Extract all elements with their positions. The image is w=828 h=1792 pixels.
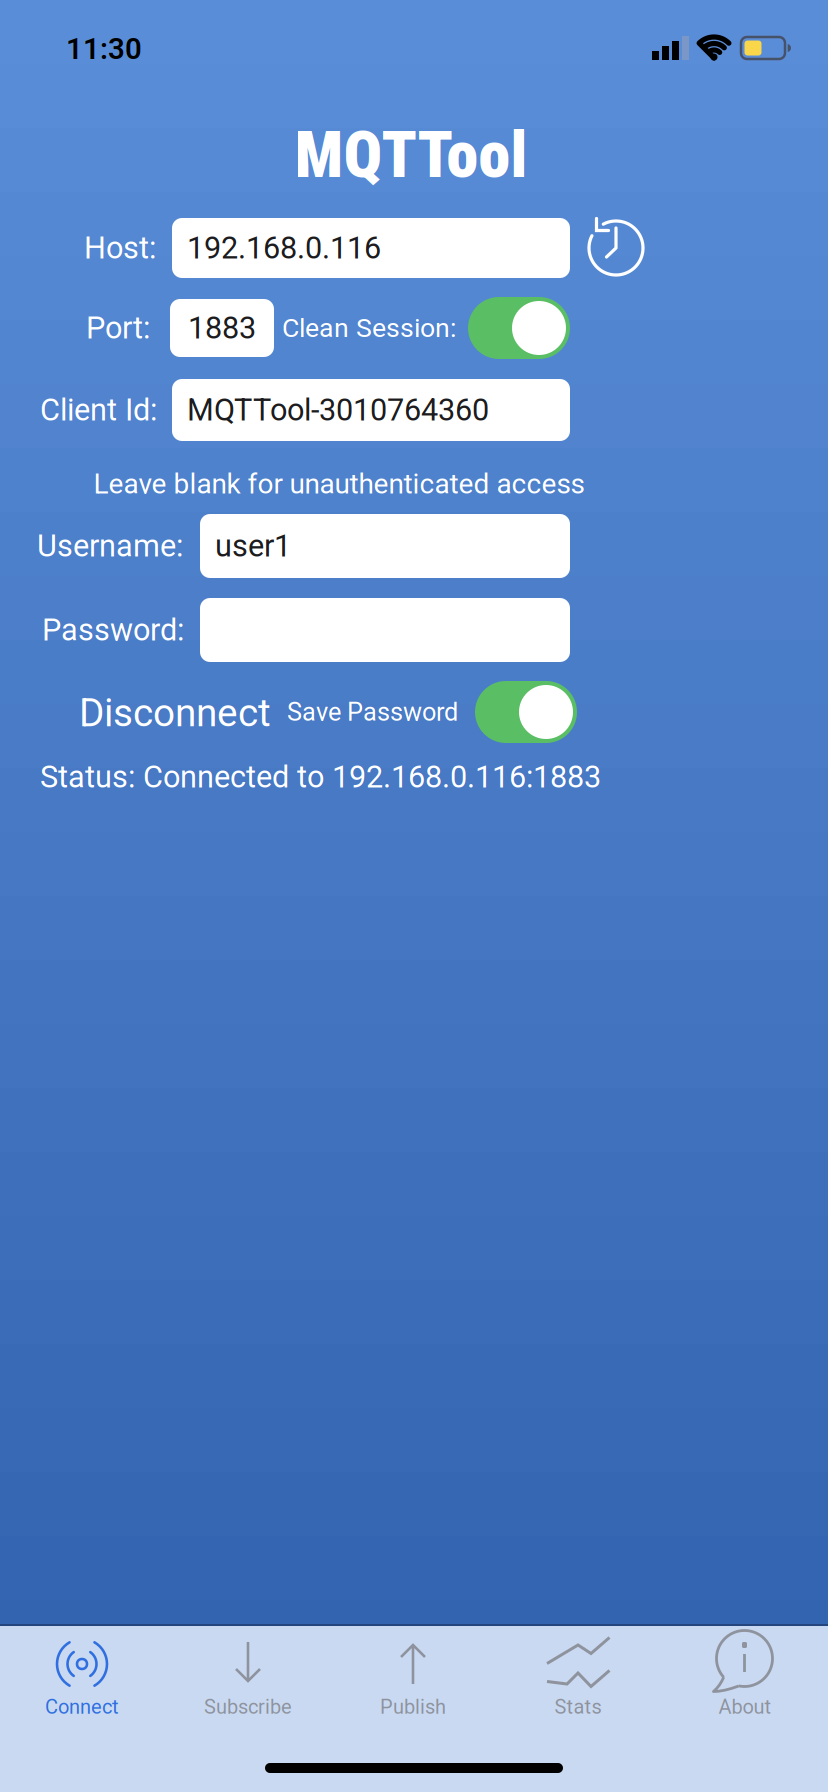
- staticText: 11:30: [66, 32, 142, 66]
- staticText: Host:: [84, 230, 156, 265]
- button[interactable]: Username: [200, 514, 570, 578]
- staticText: Status: Connected to 192.168.0.116:1883: [40, 759, 601, 794]
- button[interactable]: Stats: [496, 1626, 660, 1722]
- staticText: Publish: [380, 1696, 446, 1718]
- staticText: 1883: [188, 310, 256, 345]
- button[interactable]: Clean Session: [468, 297, 570, 359]
- button[interactable]: Host: [172, 218, 570, 278]
- button[interactable]: Disconnect: [79, 691, 271, 735]
- staticText: Client Id:: [40, 392, 157, 427]
- staticText: Disconnect: [79, 691, 271, 735]
- staticText: Username:: [37, 528, 183, 563]
- button[interactable]: Host history: [584, 216, 648, 280]
- button[interactable]: Subscribe: [166, 1626, 330, 1722]
- button[interactable]: Port: [170, 299, 274, 357]
- button[interactable]: Client Id: [172, 379, 570, 441]
- staticText: user1: [215, 528, 291, 563]
- staticText: MQTTool: [294, 117, 527, 192]
- staticText: Subscribe: [204, 1696, 292, 1718]
- staticText: Password:: [42, 612, 184, 647]
- staticText: About: [718, 1696, 771, 1718]
- button[interactable]: Publish: [331, 1626, 495, 1722]
- staticText: Leave blank for unauthenticated access: [93, 468, 584, 500]
- staticText: Port:: [86, 310, 150, 345]
- staticText: 192.168.0.116: [187, 230, 381, 265]
- button[interactable]: Save Password: [475, 681, 577, 743]
- button[interactable]: Connect: [0, 1626, 164, 1722]
- button[interactable]: About: [663, 1626, 827, 1722]
- staticText: Save Password: [287, 697, 458, 726]
- staticText: MQTTool-3010764360: [187, 392, 489, 427]
- staticText: Stats: [554, 1696, 601, 1718]
- staticText: Connect: [45, 1696, 119, 1718]
- staticText: Clean Session:: [282, 313, 456, 343]
- button[interactable]: Password: [200, 598, 570, 662]
